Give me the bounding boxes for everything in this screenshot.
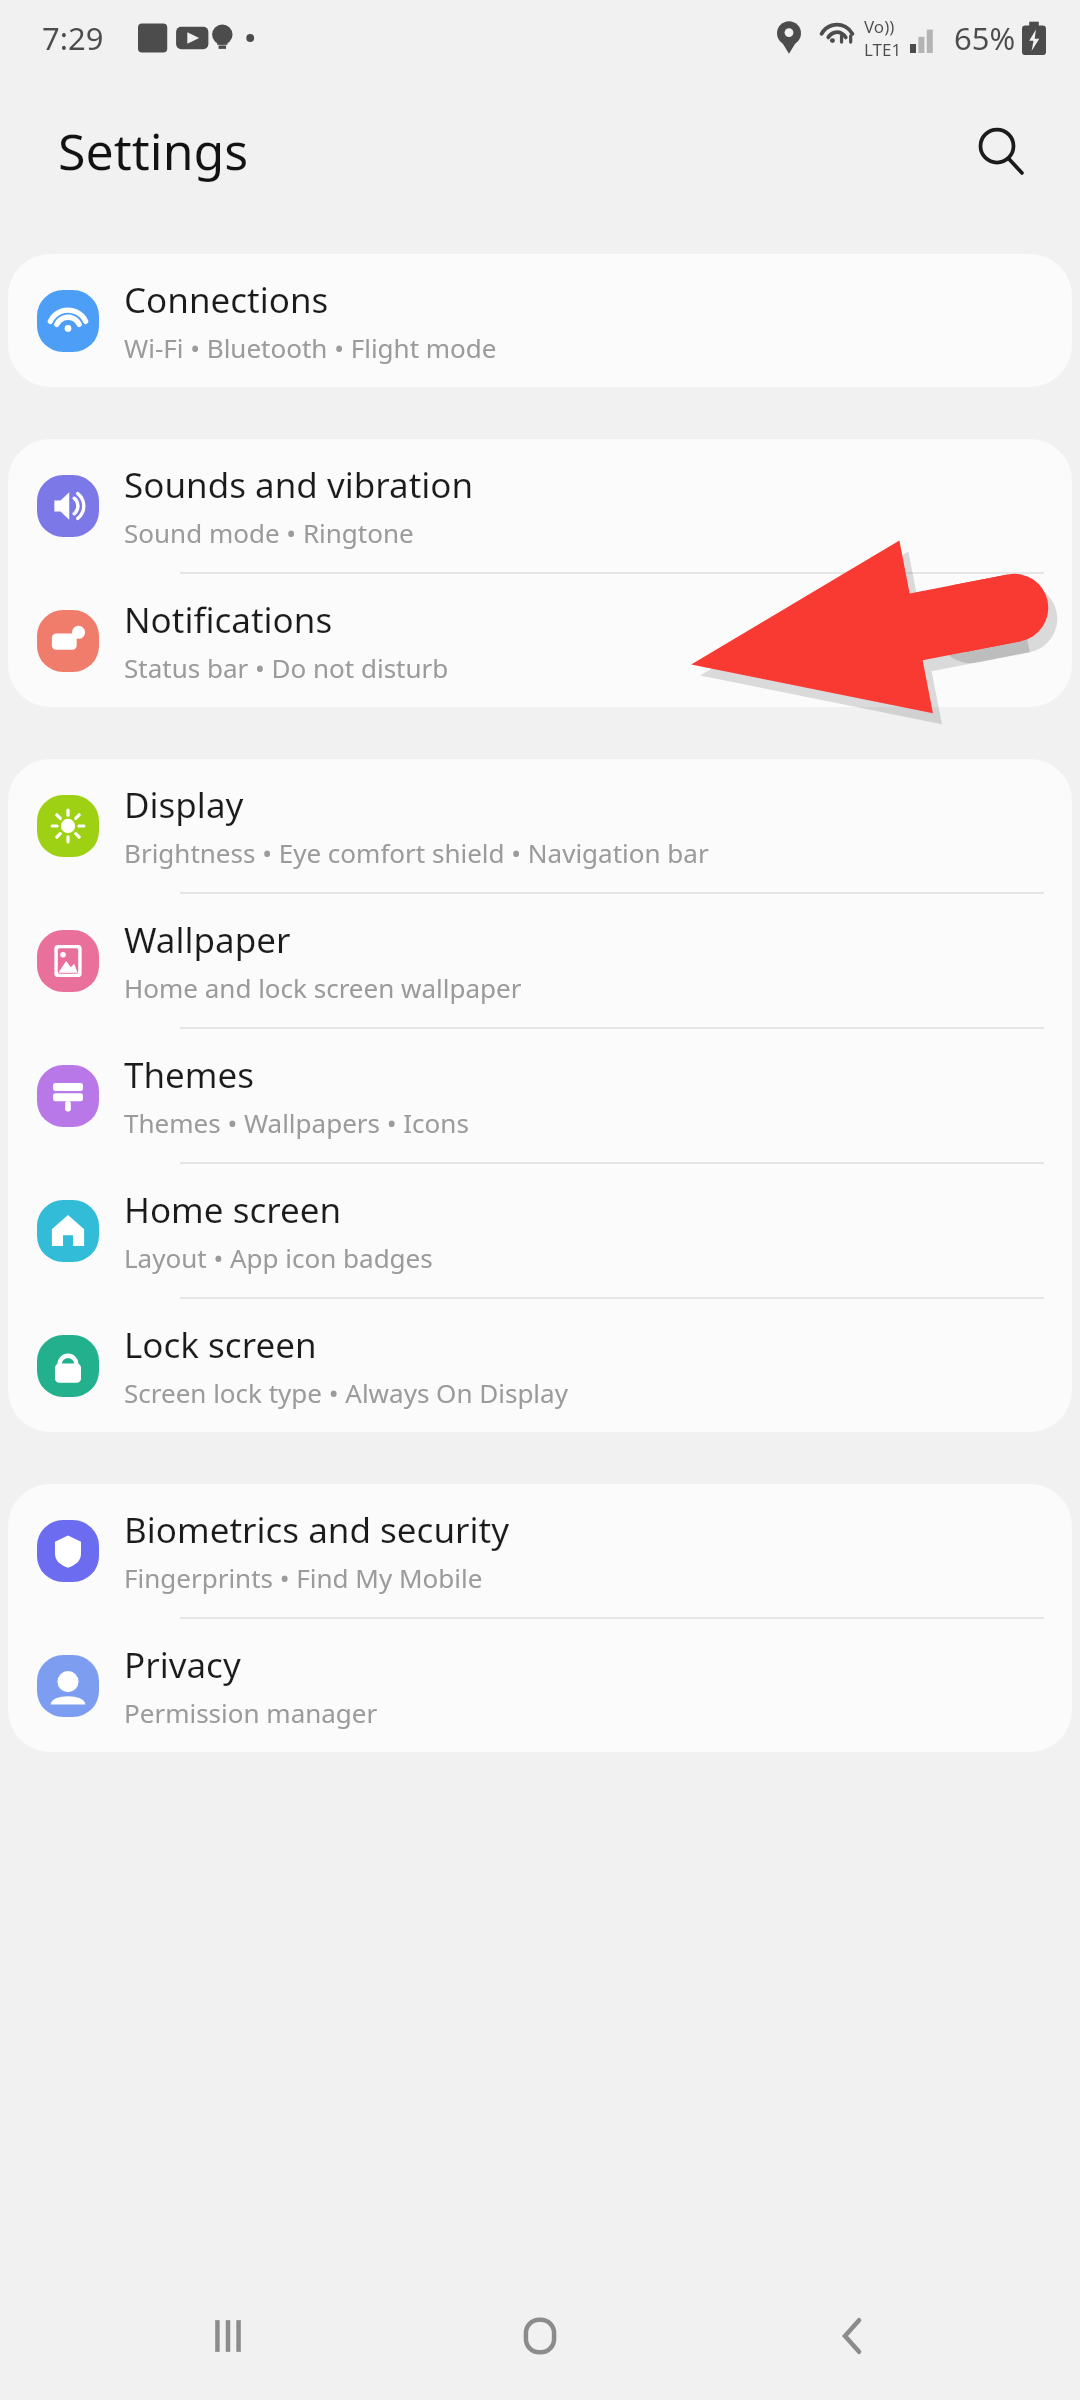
staticText: Permission manager [124,1695,378,1730]
staticText: Layout • App icon badges [124,1240,433,1275]
staticText: Lock screen [124,1321,317,1369]
staticText: 7:29 [42,17,104,59]
staticText: Home and lock screen wallpaper [124,970,522,1005]
staticText: Sound mode • Ringtone [124,515,414,550]
button[interactable]: Wallpaper [8,894,1072,1027]
button[interactable]: Privacy [8,1619,1072,1752]
staticText: Brightness • Eye comfort shield • Naviga… [124,835,709,870]
button[interactable]: Lock screen [8,1299,1072,1432]
button[interactable]: Biometrics and security [8,1484,1072,1617]
staticText: Fingerprints • Find My Mobile [124,1560,483,1595]
button[interactable]: Sounds and vibration [8,439,1072,572]
staticText: Biometrics and security [124,1506,510,1554]
button[interactable]: Home [492,2288,588,2384]
staticText: Home screen [124,1186,342,1234]
staticText: Notifications [124,596,333,644]
staticText: Connections [124,276,329,324]
staticText: Screen lock type • Always On Display [124,1375,568,1410]
staticText: Settings [58,117,249,185]
staticText: Privacy [124,1641,241,1689]
staticText: 65% [954,17,1016,59]
button[interactable]: Search [958,108,1044,194]
staticText: Display [124,781,244,829]
staticText: Themes [124,1051,255,1099]
button[interactable]: Back [804,2288,900,2384]
staticText: Wi-Fi • Bluetooth • Flight mode [124,330,497,365]
staticText: Status bar • Do not disturb [124,650,449,685]
button[interactable]: Connections [8,254,1072,387]
button[interactable]: Notifications [8,574,1072,707]
staticText: Vo)) [864,15,895,38]
button[interactable]: Recents [180,2288,276,2384]
staticText: LTE1 [864,38,902,61]
button[interactable]: Themes [8,1029,1072,1162]
staticText: Themes • Wallpapers • Icons [124,1105,469,1140]
staticText: Wallpaper [124,916,291,964]
button[interactable]: Home screen [8,1164,1072,1297]
button[interactable]: Display [8,759,1072,892]
staticText: Sounds and vibration [124,461,474,509]
